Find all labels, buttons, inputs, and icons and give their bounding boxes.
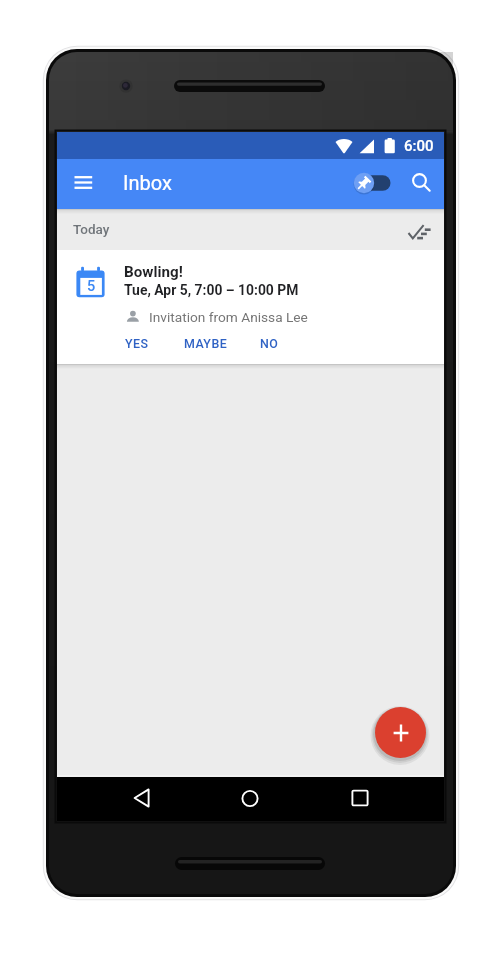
staticText: 5 xyxy=(87,278,96,295)
staticText: YES xyxy=(125,336,149,351)
staticText: Inbox xyxy=(123,171,172,194)
staticText: NO xyxy=(260,336,279,351)
button[interactable]: Mark all read xyxy=(397,211,439,251)
staticText: Tue, Apr 5, 7:00 – 10:00 PM xyxy=(124,282,299,298)
button[interactable]: NO xyxy=(254,333,285,354)
button[interactable]: YES xyxy=(119,333,155,354)
staticText: MAYBE xyxy=(184,336,228,351)
staticText: Invitation from Anissa Lee xyxy=(149,309,308,325)
button[interactable]: Recent apps xyxy=(338,777,382,821)
staticText: Bowling! xyxy=(124,263,183,281)
staticText: 6:00 xyxy=(404,137,434,155)
button[interactable]: 5 xyxy=(57,250,444,364)
button[interactable]: Open navigation drawer xyxy=(60,162,102,204)
staticText: Today xyxy=(73,221,110,237)
button[interactable]: Home xyxy=(228,777,272,821)
button[interactable]: Search xyxy=(398,162,440,204)
button[interactable]: MAYBE xyxy=(178,333,234,354)
button[interactable]: Compose xyxy=(375,707,426,758)
button[interactable]: Pin conversation xyxy=(353,166,399,200)
button[interactable]: Back xyxy=(120,777,164,821)
